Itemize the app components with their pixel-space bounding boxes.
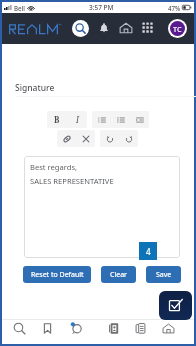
button[interactable]: Bulleted list bbox=[92, 111, 111, 128]
button[interactable]: I bbox=[67, 111, 87, 128]
button[interactable]: Clear formatting bbox=[76, 130, 95, 147]
staticText: I bbox=[76, 114, 79, 125]
button[interactable]: Clear bbox=[101, 266, 136, 283]
button[interactable]: Best regards, bbox=[24, 156, 180, 258]
button[interactable]: Numbered list bbox=[111, 111, 130, 128]
button[interactable]: Apps bbox=[142, 22, 154, 34]
staticText: 47% bbox=[168, 4, 181, 12]
staticText: 3:57 PM bbox=[89, 3, 114, 12]
staticText: Clear bbox=[110, 270, 127, 280]
staticText: Best regards, bbox=[30, 162, 78, 172]
button[interactable]: Account bbox=[170, 21, 185, 36]
button[interactable]: Home bbox=[119, 21, 133, 35]
button[interactable]: Documents bbox=[128, 316, 152, 340]
button[interactable]: 4 items bbox=[139, 242, 157, 260]
staticText: Bell bbox=[14, 4, 25, 12]
button[interactable]: New task bbox=[159, 291, 192, 320]
button[interactable]: Redo bbox=[119, 130, 138, 147]
staticText: B bbox=[54, 114, 60, 125]
button[interactable]: Search bbox=[72, 20, 89, 37]
button[interactable]: Messages bbox=[64, 316, 88, 340]
button[interactable]: Reset to Default bbox=[23, 266, 91, 283]
staticText: Reset to Default bbox=[31, 270, 84, 280]
staticText: 4 bbox=[146, 246, 151, 257]
staticText: Signature bbox=[15, 82, 55, 94]
button[interactable]: Home bbox=[156, 316, 180, 340]
button[interactable]: Bookmarks bbox=[35, 316, 59, 340]
button[interactable]: Insert link bbox=[57, 130, 76, 147]
button[interactable]: Indent bbox=[130, 111, 149, 128]
button[interactable]: Save bbox=[146, 266, 181, 283]
staticText: TC bbox=[173, 24, 182, 34]
staticText: Save bbox=[156, 270, 172, 280]
button[interactable]: Contacts bbox=[101, 316, 125, 340]
staticText: SALES REPRESENTATIVE bbox=[30, 176, 114, 186]
button[interactable]: Undo bbox=[100, 130, 119, 147]
button[interactable]: Notifications bbox=[97, 21, 111, 35]
button[interactable]: B bbox=[47, 111, 67, 128]
button[interactable]: Search bbox=[7, 316, 31, 340]
